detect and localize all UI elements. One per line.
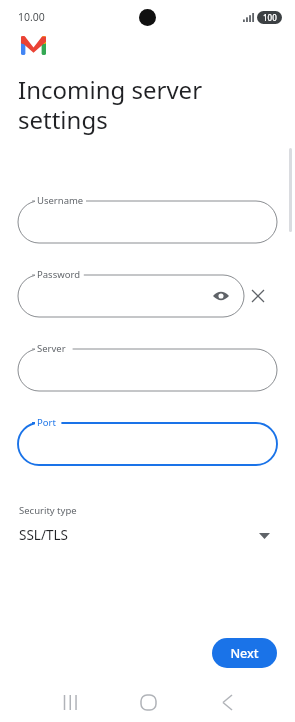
button[interactable]: Username — [18, 193, 277, 243]
button[interactable]: Recents — [42, 682, 98, 722]
staticText: Port — [37, 416, 56, 429]
button[interactable]: Server — [18, 341, 277, 391]
staticText: Username — [37, 194, 84, 207]
button[interactable]: Password — [18, 267, 244, 317]
button[interactable]: Security type — [0, 498, 295, 550]
staticText: 100 — [263, 12, 277, 23]
button[interactable]: Back — [199, 682, 255, 722]
button[interactable]: Show password — [210, 285, 232, 307]
button[interactable]: Clear — [244, 282, 272, 310]
button[interactable]: Port — [18, 415, 277, 465]
staticText: Next — [230, 645, 259, 662]
staticText: Security type — [19, 504, 77, 517]
staticText: Incoming server settings — [18, 73, 203, 136]
staticText: SSL/TLS — [19, 526, 68, 544]
staticText: Server — [37, 342, 66, 355]
button[interactable]: Home — [120, 682, 176, 722]
staticText: 10.00 — [18, 10, 45, 24]
staticText: Password — [37, 268, 80, 281]
button[interactable]: Next — [212, 638, 277, 668]
